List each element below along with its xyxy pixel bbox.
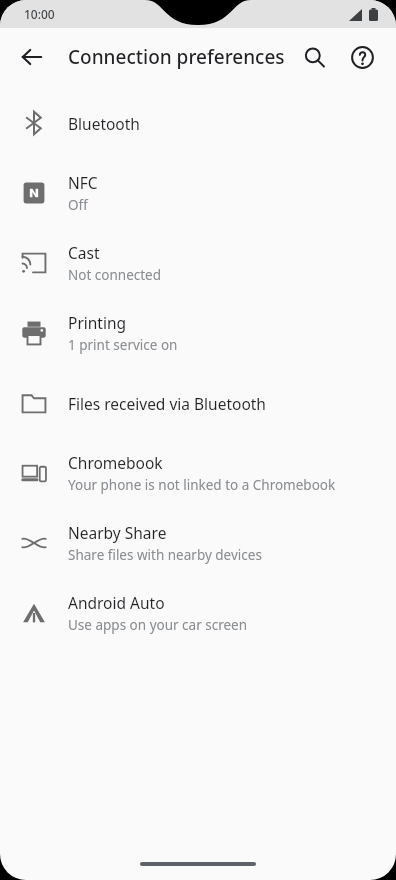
staticText: Printing	[68, 312, 127, 333]
staticText: NFC	[68, 172, 98, 193]
button[interactable]: Bluetooth	[0, 88, 396, 158]
staticText: Files received via Bluetooth	[68, 393, 266, 414]
button[interactable]: Cast	[0, 228, 396, 298]
staticText: Connection preferences	[68, 44, 290, 70]
staticText: Not connected	[68, 266, 162, 284]
button[interactable]: Android Auto	[0, 578, 396, 648]
staticText: Bluetooth	[68, 113, 140, 134]
button[interactable]: Nearby Share	[0, 508, 396, 578]
staticText: Cast	[68, 242, 100, 263]
button[interactable]: Printing	[0, 298, 396, 368]
button[interactable]: Files received via Bluetooth	[0, 368, 396, 438]
staticText: 1 print service on	[68, 336, 178, 354]
staticText: Your phone is not linked to a Chromebook	[68, 476, 336, 494]
staticText: Android Auto	[68, 592, 165, 613]
button[interactable]: NFC	[0, 158, 396, 228]
button[interactable]: Search	[290, 33, 338, 81]
button[interactable]: Chromebook	[0, 438, 396, 508]
staticText: Share files with nearby devices	[68, 546, 262, 564]
staticText: 10:00	[24, 6, 55, 22]
staticText: Chromebook	[68, 452, 163, 473]
staticText: Nearby Share	[68, 522, 167, 543]
staticText: Off	[68, 196, 88, 214]
staticText: Use apps on your car screen	[68, 616, 248, 634]
button[interactable]: Back	[8, 33, 56, 81]
button[interactable]: Help	[338, 33, 386, 81]
